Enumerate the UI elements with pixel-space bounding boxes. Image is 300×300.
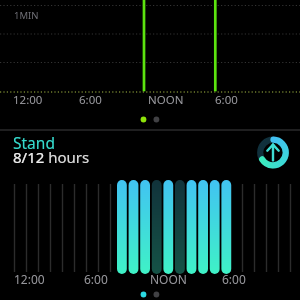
staticText: 12:00 [13,92,43,108]
staticText: 6:00 [79,92,102,108]
staticText: 6:00 [84,271,108,287]
staticText: NOON [150,271,187,287]
staticText: 8/12 hours [13,147,90,167]
staticText: 6:00 [222,271,246,287]
staticText: NOON [148,92,184,108]
staticText: 1MIN [14,9,39,22]
staticText: Stand [13,132,55,153]
staticText: 12:00 [14,271,45,287]
button[interactable] [252,133,293,174]
staticText: 6:00 [215,92,238,108]
